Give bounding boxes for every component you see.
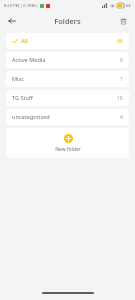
staticText: 8 [120, 57, 123, 64]
staticText: 46 [117, 38, 123, 45]
button[interactable]: Misc [6, 71, 129, 87]
button[interactable]: Active Media [6, 52, 129, 68]
button[interactable]: uncategorized [6, 109, 129, 125]
staticText: uncategorized [12, 113, 50, 121]
staticText: Active Media [12, 56, 46, 64]
staticText: 8:20 PM | 0.1KB/s [4, 3, 38, 8]
staticText: All [21, 37, 28, 45]
button[interactable]: Delete [116, 14, 130, 28]
staticText: 18 [117, 95, 123, 102]
staticText: 4 [120, 114, 123, 121]
staticText: Folders [54, 16, 81, 26]
staticText: 64 [126, 3, 131, 8]
staticText: TG Stuff [12, 94, 33, 102]
button[interactable]: TG Stuff [6, 90, 129, 106]
staticText: 1 [120, 76, 123, 83]
button[interactable]: All [6, 33, 129, 49]
button[interactable]: New folder [6, 128, 129, 158]
staticText: Misc [12, 75, 24, 83]
button[interactable]: Back [5, 14, 19, 28]
staticText: New folder [55, 146, 81, 153]
